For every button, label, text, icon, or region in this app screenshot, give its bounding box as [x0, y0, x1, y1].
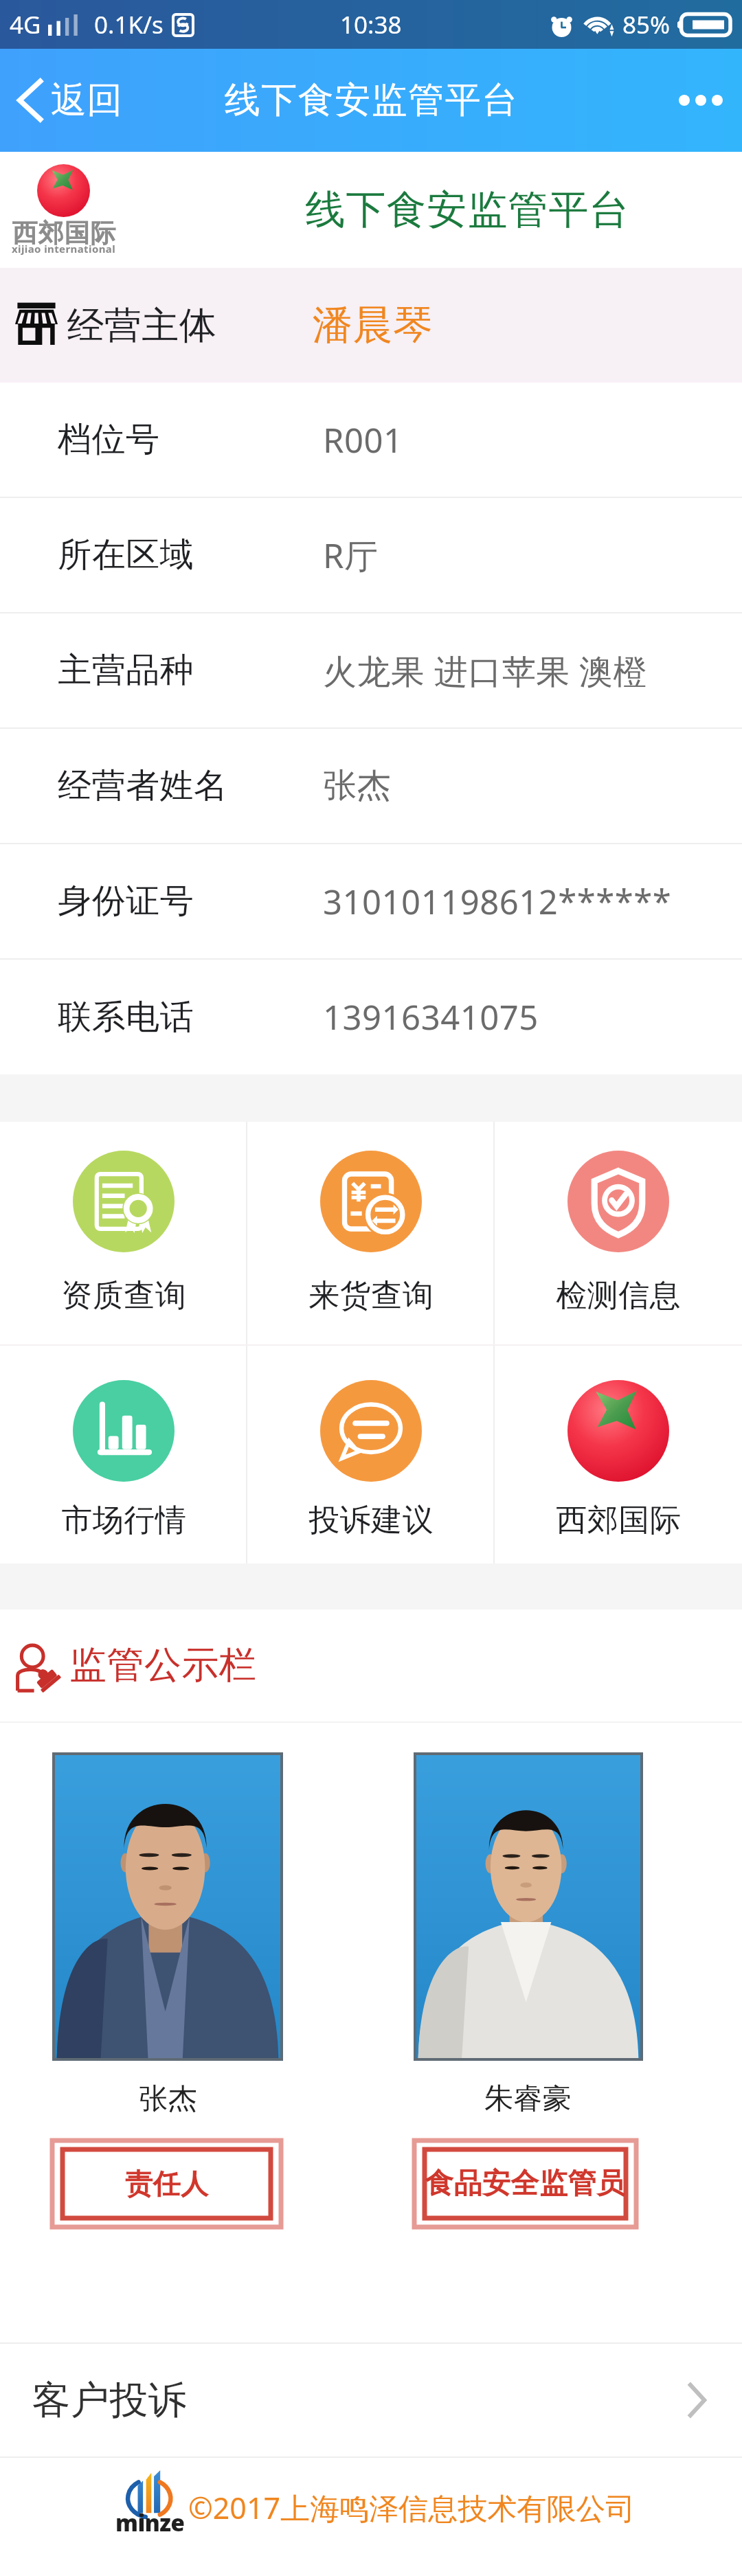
button[interactable]: 经营者姓名 — [0, 729, 742, 843]
button[interactable]: More options — [651, 67, 742, 133]
button[interactable]: 主营品种 — [0, 613, 742, 727]
button[interactable]: 市场行情 — [0, 1346, 247, 1563]
staticText: 食品安全监管员 — [425, 2166, 625, 2202]
staticText: 0.1K/s — [94, 8, 164, 41]
staticText: 线下食安监管平台 — [305, 185, 629, 235]
staticText: 潘晨琴 — [313, 300, 434, 350]
staticText: 85% — [622, 8, 671, 41]
staticText: 资质查询 — [61, 1276, 186, 1315]
button[interactable]: 食品安全监管员 — [414, 2140, 636, 2227]
staticText: 西郊国际 — [556, 1501, 681, 1540]
staticText: 监管公示栏 — [69, 1642, 257, 1688]
staticText: 档位号 — [58, 418, 160, 461]
staticText: 4G — [10, 8, 41, 41]
button[interactable]: 客户投诉 — [0, 2344, 742, 2456]
staticText: 主营品种 — [58, 649, 194, 692]
button[interactable]: 检测信息 — [495, 1122, 742, 1344]
staticText: minze — [115, 2507, 185, 2538]
button[interactable]: 西郊国际 — [495, 1346, 742, 1563]
staticText: 10:38 — [340, 8, 402, 41]
staticText: 经营者姓名 — [58, 765, 228, 807]
staticText: 朱睿豪 — [484, 2081, 572, 2112]
staticText: 线下食安监管平台 — [224, 78, 518, 123]
staticText: 经营主体 — [67, 302, 216, 349]
staticText: ©2017上海鸣泽信息技术有限公司 — [188, 2487, 636, 2528]
button[interactable]: 档位号 — [0, 383, 742, 497]
staticText: xijiao international — [12, 242, 116, 256]
staticText: 310101198612****** — [323, 879, 672, 925]
button[interactable]: 资质查询 — [0, 1122, 247, 1344]
staticText: 责任人 — [125, 2167, 209, 2201]
staticText: 西郊国际 — [12, 217, 116, 249]
staticText: 身份证号 — [58, 880, 194, 923]
staticText: 来货查询 — [308, 1276, 434, 1315]
button[interactable]: 投诉建议 — [247, 1346, 495, 1563]
staticText: R001 — [323, 417, 403, 463]
button[interactable]: 身份证号 — [0, 844, 742, 958]
staticText: R厅 — [323, 532, 379, 578]
staticText: 张杰 — [323, 765, 391, 807]
staticText: 13916341075 — [323, 994, 539, 1040]
button[interactable]: 返回 — [0, 64, 139, 137]
staticText: 所在区域 — [58, 534, 194, 576]
staticText: 市场行情 — [61, 1501, 186, 1540]
staticText: 联系电话 — [58, 996, 194, 1039]
staticText: 投诉建议 — [308, 1501, 434, 1540]
button[interactable]: 来货查询 — [247, 1122, 495, 1344]
button[interactable]: 责任人 — [52, 2140, 281, 2227]
staticText: 检测信息 — [556, 1276, 681, 1315]
staticText: 火龙果 进口苹果 澳橙 — [323, 648, 647, 694]
button[interactable]: 所在区域 — [0, 498, 742, 612]
button[interactable]: 联系电话 — [0, 960, 742, 1074]
staticText: 返回 — [51, 78, 122, 123]
staticText: 张杰 — [139, 2081, 197, 2112]
staticText: 客户投诉 — [32, 2376, 187, 2425]
